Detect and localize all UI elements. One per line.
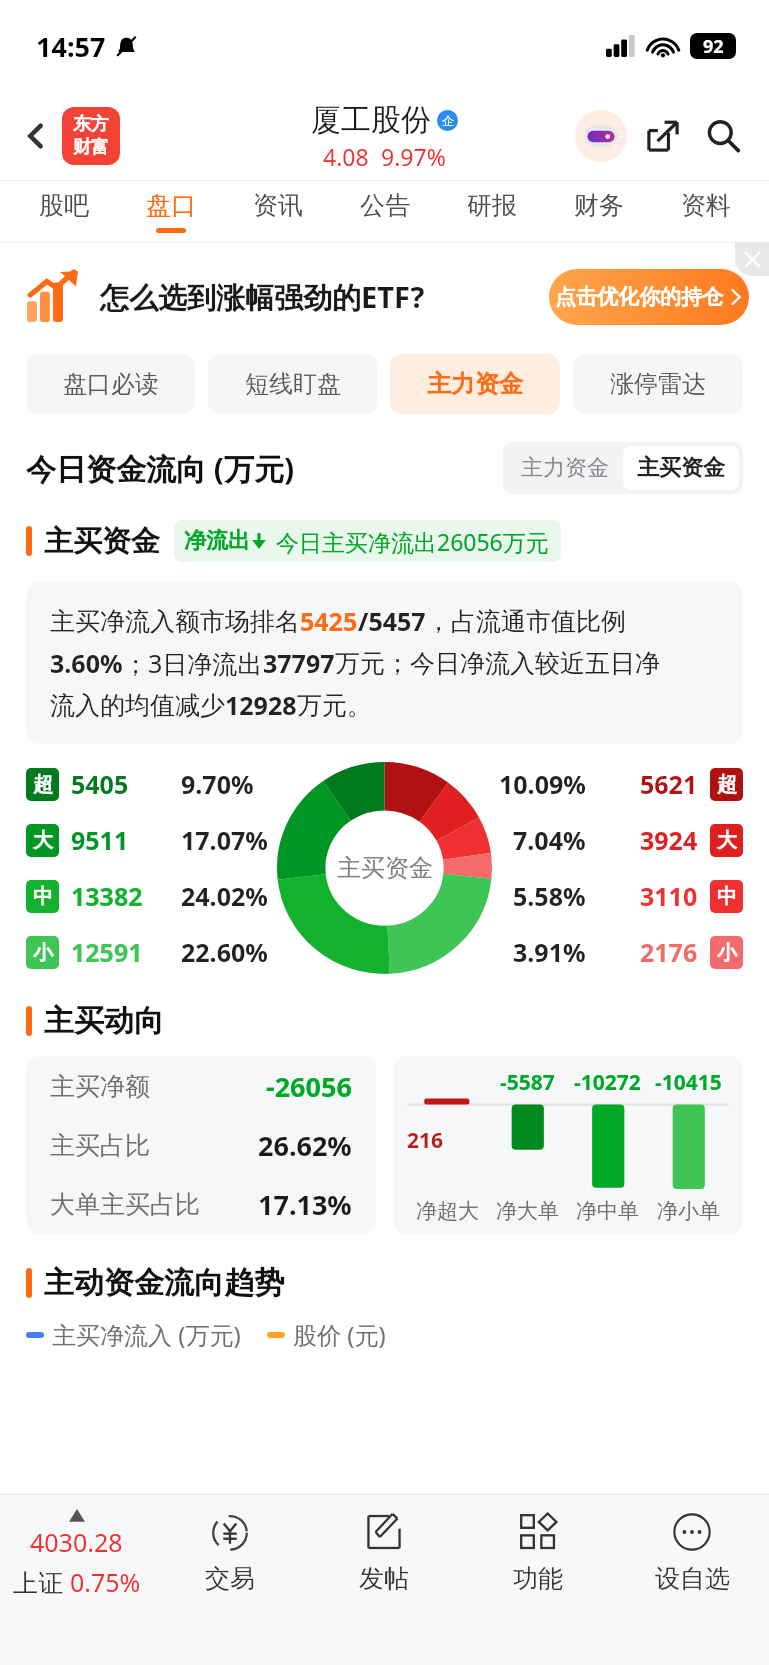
- button[interactable]: 涨停雷达: [573, 354, 743, 414]
- staticText: 5405: [71, 767, 129, 801]
- staticText: 上证: [13, 1565, 70, 1599]
- staticText: 主买动向: [44, 1002, 164, 1040]
- staticText: 功能: [513, 1563, 563, 1594]
- staticText: 9.97%: [381, 141, 446, 172]
- staticText: 主力资金: [427, 369, 523, 399]
- staticText: 财务: [574, 190, 624, 221]
- button[interactable]: 资料: [652, 180, 759, 242]
- staticText: 净小单: [657, 1198, 720, 1224]
- staticText: 2176: [640, 935, 698, 969]
- staticText: 3.60%: [50, 646, 123, 680]
- button[interactable]: 公告: [331, 180, 438, 242]
- staticText: 厦工股份: [311, 101, 431, 139]
- staticText: 216: [407, 1126, 444, 1155]
- staticText: 主买净流入 (万元): [52, 1318, 241, 1351]
- staticText: 净大单: [496, 1198, 559, 1224]
- staticText: 股吧: [39, 190, 89, 221]
- staticText: 22.60%: [181, 935, 268, 969]
- button[interactable]: 主力资金: [390, 354, 560, 414]
- staticText: 万元。: [297, 690, 372, 721]
- staticText: 财富: [73, 136, 109, 159]
- button[interactable]: 怎么选到涨幅强劲的ETF?: [26, 242, 749, 352]
- staticText: 主买资金: [337, 853, 433, 883]
- staticText: 超: [33, 772, 53, 797]
- staticText: 怎么选到涨幅强劲的ETF?: [100, 277, 425, 317]
- staticText: 26.62%: [258, 1127, 352, 1164]
- staticText: 14:57: [36, 28, 106, 65]
- staticText: 12591: [71, 935, 143, 969]
- staticText: 资料: [681, 190, 731, 221]
- staticText: 中: [717, 884, 737, 909]
- button[interactable]: 交易: [153, 1495, 307, 1665]
- staticText: 17.13%: [258, 1186, 352, 1223]
- staticText: 4.08: [323, 141, 369, 172]
- staticText: 万元；今日净流入较近五日净: [335, 648, 660, 679]
- staticText: /5457: [358, 604, 426, 638]
- button[interactable]: Share: [635, 108, 691, 164]
- staticText: 10.09%: [499, 767, 586, 801]
- staticText: 主买净额: [50, 1071, 150, 1102]
- staticText: 点击优化你的持仓: [555, 284, 723, 310]
- staticText: 大单主买占比: [50, 1189, 200, 1220]
- button[interactable]: Close ad: [735, 242, 769, 276]
- staticText: 研报: [467, 190, 517, 221]
- button[interactable]: AI assistant: [573, 108, 629, 164]
- button[interactable]: 主买资金: [637, 446, 725, 490]
- button[interactable]: 东方: [62, 107, 120, 165]
- staticText: 净流出: [184, 527, 250, 555]
- staticText: 主买净流入额市场排名: [50, 606, 300, 637]
- staticText: 3924: [640, 823, 698, 857]
- button[interactable]: Search: [695, 108, 751, 164]
- button[interactable]: 点击优化你的持仓: [549, 269, 749, 325]
- button[interactable]: 财务: [545, 180, 652, 242]
- staticText: 资讯: [253, 190, 303, 221]
- staticText: 3110: [640, 879, 698, 913]
- staticText: 盘口必读: [63, 369, 159, 399]
- staticText: 盘口: [146, 190, 196, 221]
- staticText: 小: [717, 940, 737, 965]
- staticText: 12928: [225, 688, 297, 722]
- staticText: 中: [33, 884, 53, 909]
- button[interactable]: 资讯: [224, 180, 331, 242]
- staticText: 主买资金: [44, 523, 160, 560]
- staticText: 今日资金流向 (万元): [26, 448, 295, 489]
- button[interactable]: 设自选: [615, 1495, 769, 1665]
- staticText: 0.75%: [70, 1565, 141, 1599]
- staticText: ，占流通市值比例: [426, 606, 626, 637]
- staticText: 净中单: [576, 1198, 639, 1224]
- staticText: 流入的均值减少: [50, 690, 225, 721]
- button[interactable]: 股吧: [10, 180, 117, 242]
- button[interactable]: Back: [14, 114, 58, 158]
- button[interactable]: 短线盯盘: [208, 354, 377, 414]
- staticText: 13382: [71, 879, 143, 913]
- staticText: -26056: [266, 1068, 352, 1105]
- staticText: -5587: [500, 1068, 555, 1097]
- staticText: ；3日净流出: [123, 646, 263, 680]
- button[interactable]: 功能: [461, 1495, 615, 1665]
- staticText: 短线盯盘: [245, 369, 341, 399]
- button[interactable]: 主力资金: [521, 446, 609, 490]
- staticText: -10272: [574, 1068, 641, 1097]
- staticText: 5.58%: [513, 879, 586, 913]
- staticText: 24.02%: [181, 879, 268, 913]
- staticText: 9511: [71, 823, 129, 857]
- staticText: 大: [717, 828, 737, 853]
- staticText: 主力资金: [521, 454, 609, 482]
- button[interactable]: 发帖: [307, 1495, 461, 1665]
- staticText: -10415: [655, 1068, 722, 1097]
- staticText: 股价 (元): [293, 1318, 386, 1351]
- button[interactable]: 4030.28: [0, 1495, 153, 1665]
- staticText: 公告: [360, 190, 410, 221]
- staticText: 净超大: [416, 1198, 479, 1224]
- button[interactable]: 研报: [438, 180, 545, 242]
- staticText: 发帖: [359, 1563, 409, 1594]
- staticText: 超: [717, 772, 737, 797]
- staticText: 5621: [640, 767, 698, 801]
- button[interactable]: 盘口: [117, 180, 224, 242]
- staticText: 主买占比: [50, 1130, 150, 1161]
- button[interactable]: 盘口必读: [26, 354, 195, 414]
- staticText: 设自选: [655, 1563, 730, 1594]
- staticText: 交易: [205, 1563, 255, 1594]
- staticText: 主买资金: [637, 454, 725, 482]
- staticText: 主动资金流向趋势: [44, 1264, 284, 1302]
